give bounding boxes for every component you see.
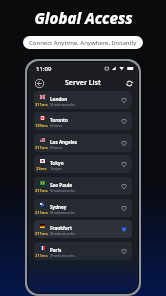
button[interactable]: Favorite <box>119 224 129 234</box>
button[interactable]: 211ms <box>34 134 132 152</box>
staticText: Sao Paulo <box>50 182 73 188</box>
button[interactable]: 211ms <box>34 220 132 238</box>
button[interactable]: Favorite <box>119 246 129 256</box>
button[interactable]: 211ms <box>34 91 132 109</box>
staticText: Global Access <box>34 8 133 28</box>
staticText: Shadowsocks <box>50 188 76 193</box>
staticText: Tokyo <box>50 160 64 166</box>
staticText: 211ms <box>35 210 48 215</box>
staticText: Server List <box>65 78 101 88</box>
staticText: London <box>50 96 68 102</box>
staticText: 211ms <box>35 253 48 258</box>
button[interactable]: Favorite <box>119 138 129 148</box>
button[interactable]: 129ms <box>34 112 132 130</box>
staticText: 23ms <box>36 166 47 171</box>
staticText: 211ms <box>35 231 48 236</box>
button[interactable]: Favorite <box>119 203 129 213</box>
staticText: Shadowsocks <box>50 102 76 107</box>
staticText: Shadowsocks <box>50 231 76 236</box>
button[interactable]: 211ms <box>34 199 132 217</box>
button[interactable]: Refresh <box>124 78 134 88</box>
staticText: Trojan <box>50 166 62 171</box>
staticText: Vmess <box>50 123 63 128</box>
staticText: 129ms <box>35 123 48 128</box>
staticText: Frankfurt <box>50 225 72 231</box>
staticText: Shadowsocks <box>50 253 76 258</box>
button[interactable]: Favorite <box>119 95 129 105</box>
staticText: Sydney <box>50 204 67 210</box>
staticText: Vmess <box>50 145 63 150</box>
staticText: 211ms <box>35 145 48 150</box>
button[interactable]: 211ms <box>34 242 132 260</box>
staticText: 211ms <box>35 102 48 107</box>
button[interactable]: 23ms <box>34 155 132 173</box>
staticText: 11:09 <box>36 65 52 73</box>
staticText: Los Angeles <box>50 139 78 145</box>
button[interactable]: Back <box>34 78 44 88</box>
button[interactable]: 211ms <box>34 177 132 195</box>
button[interactable]: Favorite <box>119 159 129 169</box>
staticText: Paris <box>50 247 62 253</box>
button[interactable]: Favorite <box>119 116 129 126</box>
staticText: 211ms <box>35 188 48 193</box>
staticText: Connect Anytime, Anywhere, Instantly <box>29 39 137 47</box>
button[interactable]: Favorite <box>119 181 129 191</box>
staticText: Toronto <box>50 117 68 123</box>
staticText: Shadowsocks <box>50 210 76 215</box>
